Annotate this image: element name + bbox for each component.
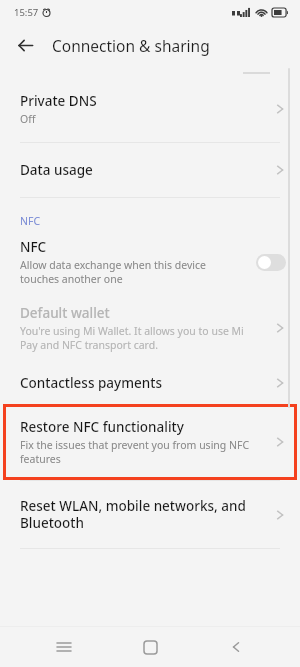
button[interactable]: Data usage: [0, 143, 300, 197]
staticText: You're using Mi Wallet. It allows you to…: [20, 324, 262, 352]
staticText: Connection & sharing: [52, 35, 210, 56]
staticText: Allow data exchange when this device tou…: [20, 258, 244, 286]
staticText: Off: [20, 112, 36, 126]
button[interactable]: Restore NFC functionality: [3, 404, 297, 480]
staticText: Contactless payments: [20, 374, 162, 392]
button[interactable]: Private DNS: [0, 76, 300, 142]
button[interactable]: Contactless payments: [0, 362, 300, 404]
staticText: Fix the issues that prevent you from usi…: [20, 438, 262, 466]
staticText: Reset WLAN, mobile networks, and Bluetoo…: [20, 497, 262, 532]
staticText: NFC: [20, 214, 41, 228]
button[interactable]: Recents: [42, 627, 86, 667]
staticText: Default wallet: [20, 304, 110, 322]
staticText: NFC: [20, 238, 47, 256]
staticText: Data usage: [20, 161, 93, 179]
staticText: Private DNS: [20, 92, 97, 110]
button[interactable]: Default wallet: [0, 294, 300, 362]
button[interactable]: Back: [8, 28, 42, 62]
button[interactable]: Toggle NFC: [256, 254, 286, 271]
button[interactable]: Back: [214, 627, 258, 667]
button[interactable]: NFC: [0, 236, 300, 294]
staticText: 15:57: [14, 6, 39, 19]
button[interactable]: Reset WLAN, mobile networks, and Bluetoo…: [0, 481, 300, 548]
staticText: Restore NFC functionality: [20, 418, 184, 436]
button[interactable]: Home: [128, 627, 172, 667]
